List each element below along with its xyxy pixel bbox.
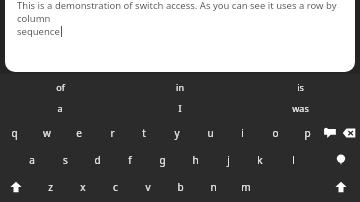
button[interactable]: in <box>120 81 240 93</box>
button[interactable]: h <box>181 146 209 173</box>
staticText: v <box>145 180 151 194</box>
button[interactable]: l <box>279 146 307 173</box>
button[interactable]: f <box>116 146 144 173</box>
button[interactable]: z <box>36 173 64 200</box>
staticText: a <box>57 102 63 114</box>
button[interactable]: I <box>120 102 240 114</box>
staticText: n <box>210 180 217 194</box>
button[interactable]: o <box>261 120 289 146</box>
staticText: r <box>110 126 115 140</box>
button[interactable]: Emoji keyboard <box>319 122 341 144</box>
staticText: f <box>128 153 132 167</box>
button[interactable]: a <box>0 102 120 114</box>
button[interactable]: Shift <box>5 176 27 198</box>
button[interactable]: is <box>240 81 360 93</box>
staticText: y <box>174 126 180 140</box>
staticText: is <box>297 81 304 93</box>
button[interactable]: b <box>166 173 194 200</box>
staticText: z <box>48 180 53 194</box>
staticText: q <box>11 126 18 140</box>
staticText: This is a demonstration of switch access… <box>17 0 343 25</box>
staticText: l <box>292 153 295 167</box>
staticText: a <box>29 153 35 167</box>
staticText: x <box>80 180 86 194</box>
button[interactable]: s <box>51 146 79 173</box>
staticText: k <box>257 153 263 167</box>
button[interactable]: r <box>98 120 126 146</box>
staticText: g <box>159 153 166 167</box>
staticText: t <box>142 126 146 140</box>
button[interactable]: e <box>65 120 93 146</box>
button[interactable]: i <box>228 120 256 146</box>
staticText: h <box>192 153 199 167</box>
button[interactable]: m <box>232 173 260 200</box>
button[interactable]: of <box>0 81 120 93</box>
staticText: was <box>292 102 309 114</box>
staticText: p <box>304 126 311 140</box>
staticText: e <box>76 126 82 140</box>
staticText: i <box>241 126 244 140</box>
staticText: w <box>43 126 51 140</box>
staticText: sequence <box>17 25 60 38</box>
button[interactable]: a <box>18 146 46 173</box>
button[interactable]: Backspace <box>338 122 360 144</box>
button[interactable]: was <box>240 102 360 114</box>
staticText: b <box>177 180 184 194</box>
staticText: j <box>227 153 230 167</box>
button[interactable]: j <box>214 146 242 173</box>
button[interactable]: y <box>163 120 191 146</box>
button[interactable]: u <box>196 120 224 146</box>
staticText: s <box>63 153 68 167</box>
staticText: m <box>241 180 251 194</box>
button[interactable]: k <box>246 146 274 173</box>
staticText: of <box>56 81 65 93</box>
staticText: c <box>113 180 118 194</box>
button[interactable]: Shift <box>330 176 352 198</box>
button[interactable]: t <box>130 120 158 146</box>
staticText: d <box>94 153 101 167</box>
button[interactable]: q <box>0 120 28 146</box>
button[interactable]: w <box>33 120 61 146</box>
staticText: u <box>207 126 214 140</box>
staticText: in <box>176 81 184 93</box>
staticText: o <box>272 126 279 140</box>
button[interactable]: g <box>148 146 176 173</box>
button[interactable]: n <box>199 173 227 200</box>
button[interactable]: v <box>134 173 162 200</box>
button[interactable]: This is a demonstration of switch access… <box>5 0 355 72</box>
button[interactable]: Enter <box>330 149 352 171</box>
button[interactable]: d <box>83 146 111 173</box>
button[interactable]: x <box>69 173 97 200</box>
staticText: I <box>178 102 182 114</box>
button[interactable]: c <box>101 173 129 200</box>
button[interactable]: p <box>293 120 321 146</box>
